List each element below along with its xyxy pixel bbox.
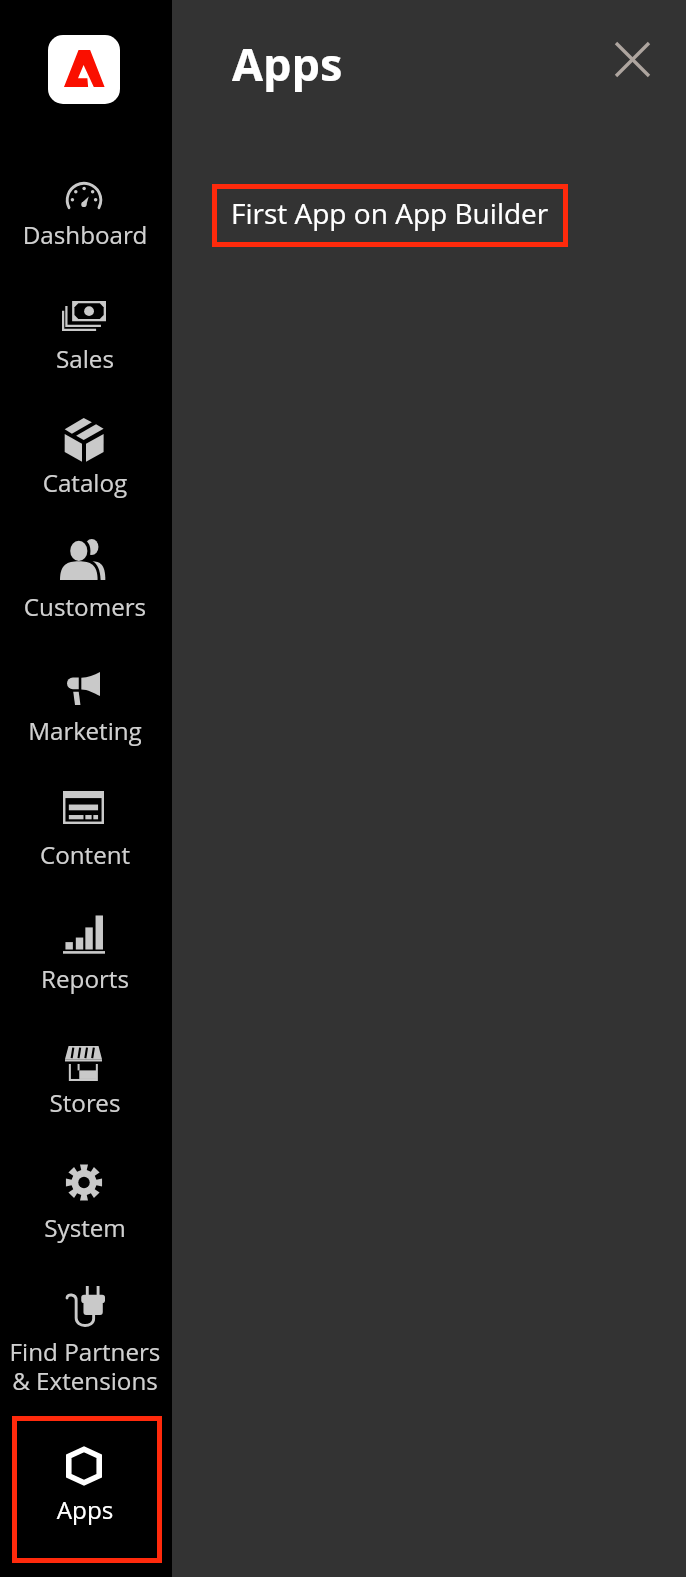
button[interactable]: [0, 1150, 172, 1266]
staticText: Content: [0, 838, 171, 871]
staticText: First App on App Builder: [231, 194, 549, 232]
staticText: System: [0, 1211, 171, 1244]
button[interactable]: [0, 525, 172, 641]
staticText: Find Partners & Extensions: [0, 1335, 171, 1397]
button[interactable]: [0, 658, 172, 774]
button[interactable]: [12, 1416, 162, 1563]
staticText: Customers: [0, 590, 171, 623]
button[interactable]: [0, 404, 172, 520]
staticText: Marketing: [0, 714, 171, 747]
staticText: Dashboard: [0, 218, 171, 251]
button[interactable]: [0, 287, 172, 403]
button[interactable]: [0, 777, 172, 893]
button[interactable]: [0, 1032, 172, 1148]
button[interactable]: [0, 168, 172, 284]
staticText: Reports: [0, 962, 171, 995]
staticText: Sales: [0, 342, 171, 375]
button[interactable]: [0, 901, 172, 1017]
staticText: Apps: [232, 33, 343, 94]
button[interactable]: Adobe Commerce home: [48, 35, 120, 104]
staticText: Stores: [0, 1086, 171, 1119]
button[interactable]: Close: [602, 29, 663, 90]
button[interactable]: First App on App Builder: [212, 184, 568, 247]
staticText: Apps: [0, 1493, 171, 1526]
staticText: Catalog: [0, 466, 171, 499]
button[interactable]: [0, 1272, 172, 1388]
